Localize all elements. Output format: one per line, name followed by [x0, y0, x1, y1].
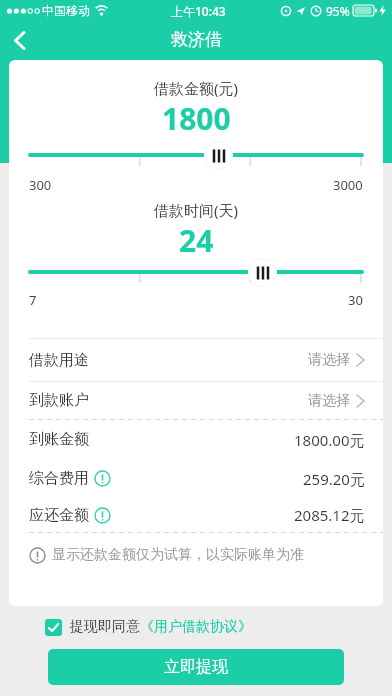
staticText: 借款金额(元) — [154, 78, 239, 98]
button[interactable] — [5, 26, 33, 54]
staticText: 中国移动 — [42, 3, 90, 18]
staticText: 2085.12元 — [294, 505, 365, 525]
staticText: 95% — [326, 3, 350, 19]
staticText: 到账金额 — [29, 430, 89, 449]
staticText: 借款时间(天) — [154, 200, 239, 220]
staticText: 请选择 — [308, 392, 350, 410]
staticText: 上午10:43 — [171, 3, 226, 19]
button[interactable]: 到款账户 — [9, 382, 383, 419]
button[interactable] — [204, 141, 233, 170]
staticText: 提现即同意 — [70, 618, 140, 636]
staticText: 借款用途 — [29, 351, 89, 370]
staticText: 到款账户 — [29, 391, 89, 410]
staticText: 259.20元 — [303, 469, 365, 489]
staticText: 7 — [29, 291, 37, 307]
staticText: 1800 — [162, 98, 231, 130]
button[interactable] — [248, 258, 277, 287]
staticText: 显示还款金额仅为试算，以实际账单为准 — [52, 546, 304, 564]
staticText: 救济借 — [171, 29, 222, 50]
staticText: 300 — [29, 176, 52, 192]
staticText: 立即提现 — [164, 657, 228, 677]
button[interactable]: 立即提现 — [48, 649, 344, 685]
staticText: 请选择 — [308, 351, 350, 369]
staticText: 24 — [179, 220, 214, 252]
staticText: 3000 — [333, 176, 363, 192]
button[interactable]: 借款用途 — [9, 339, 383, 381]
button[interactable]: 《用户借款协议》 — [140, 618, 252, 636]
staticText: 1800.00元 — [294, 430, 365, 450]
staticText: 应还金额 — [29, 506, 89, 525]
staticText: 综合费用 — [29, 469, 89, 488]
button[interactable]: 提现即同意 — [45, 618, 252, 636]
staticText: 30 — [348, 291, 363, 307]
